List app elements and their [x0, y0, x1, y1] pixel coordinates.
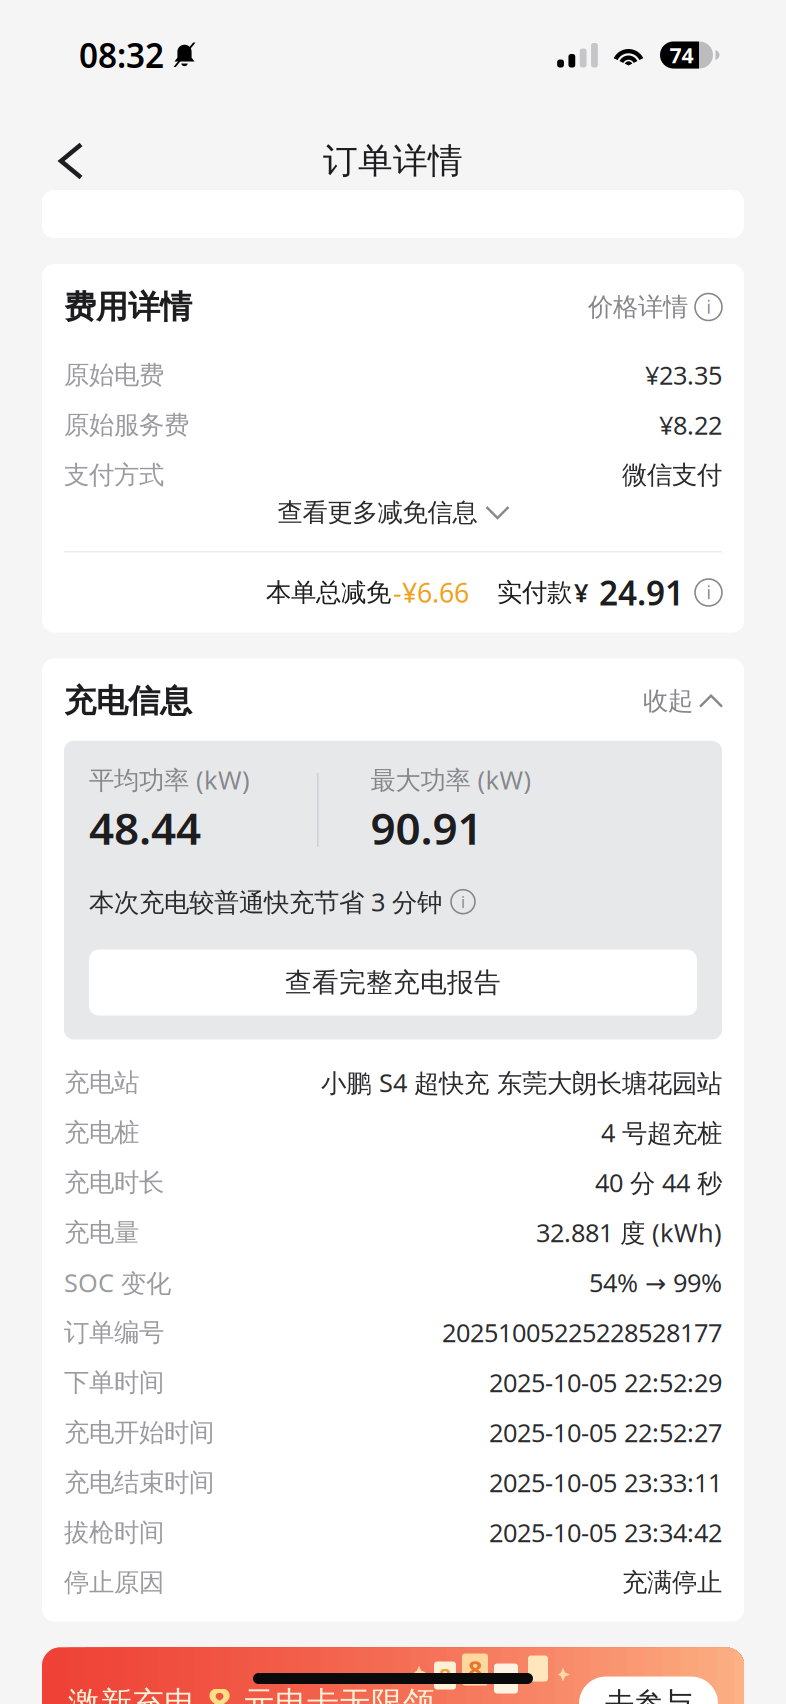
staticText: 最大功率 (kW)	[370, 763, 531, 796]
staticText: 本次充电较普通快充节省 3 分钟	[89, 885, 442, 918]
staticText: 订单详情	[323, 140, 463, 182]
staticText: 元电卡无限领	[243, 1684, 435, 1704]
staticText: i	[706, 295, 710, 318]
button[interactable]: 查看完整充电报告	[89, 949, 697, 1015]
staticText: 08:32	[79, 33, 164, 77]
staticText: 本单总减免	[266, 577, 391, 608]
staticText: 8	[196, 1674, 243, 1704]
staticText: 激新充电	[68, 1684, 196, 1704]
staticText: 40 分 44 秒	[595, 1166, 722, 1199]
staticText: i	[461, 891, 465, 912]
button[interactable]: 收起	[643, 686, 722, 717]
staticText: 充电站	[64, 1067, 139, 1098]
staticText: 平均功率 (kW)	[89, 763, 250, 796]
staticText: 充电开始时间	[64, 1417, 214, 1448]
staticText: 充电信息	[64, 681, 192, 721]
button[interactable]: 价格详情	[588, 291, 722, 322]
staticText: -¥6.66	[393, 575, 469, 610]
staticText: 74	[669, 41, 693, 69]
staticText: 2025-10-05 22:52:27	[489, 1416, 722, 1449]
staticText: 支付方式	[64, 459, 164, 490]
staticText: 费用详情	[64, 287, 192, 327]
staticText: 8	[439, 1661, 451, 1690]
staticText: 下单时间	[64, 1367, 164, 1398]
staticText: 拔枪时间	[64, 1517, 164, 1548]
button[interactable]: 返回	[41, 128, 101, 194]
staticText: 停止原因	[64, 1567, 164, 1598]
button[interactable]: 查看更多减免信息	[64, 500, 722, 525]
staticText: 90.91	[370, 798, 482, 857]
staticText: 查看完整充电报告	[285, 966, 501, 999]
staticText: 32.881 度 (kWh)	[536, 1216, 722, 1249]
staticText: 充电量	[64, 1217, 139, 1248]
staticText: 24.91	[599, 570, 684, 615]
staticText: 4 号超充桩	[601, 1116, 722, 1149]
staticText: 54% → 99%	[589, 1266, 722, 1299]
staticText: i	[706, 581, 710, 604]
staticText: SOC 变化	[64, 1266, 171, 1299]
staticText: 去参与	[605, 1685, 692, 1704]
staticText: 原始电费	[64, 359, 164, 390]
staticText: 充电结束时间	[64, 1467, 214, 1498]
staticText: 充电时长	[64, 1167, 164, 1198]
staticText: 2025-10-05 23:33:11	[489, 1466, 722, 1499]
staticText: 48.44	[89, 798, 201, 857]
staticText: 收起	[643, 686, 693, 717]
staticText: 实付款	[497, 577, 572, 608]
staticText: 2025-10-05 23:34:42	[489, 1516, 722, 1549]
staticText: 查看更多减免信息	[277, 497, 477, 528]
staticText: ¥8.22	[659, 408, 722, 442]
staticText: 充电桩	[64, 1117, 139, 1148]
button[interactable]: 8	[0, 1647, 786, 1704]
staticText: 20251005225228528177	[442, 1316, 722, 1349]
staticText: 充满停止	[622, 1567, 722, 1598]
staticText: ¥23.35	[645, 358, 722, 392]
staticText: 价格详情	[588, 291, 688, 322]
staticText: 订单编号	[64, 1317, 164, 1348]
staticText: 原始服务费	[64, 409, 189, 440]
staticText: 2025-10-05 22:52:29	[489, 1366, 722, 1399]
staticText: ¥	[574, 576, 588, 609]
staticText: 微信支付	[622, 459, 722, 490]
staticText: 8	[468, 1653, 482, 1686]
staticText: 小鹏 S4 超快充 东莞大朗长塘花园站	[321, 1066, 722, 1099]
